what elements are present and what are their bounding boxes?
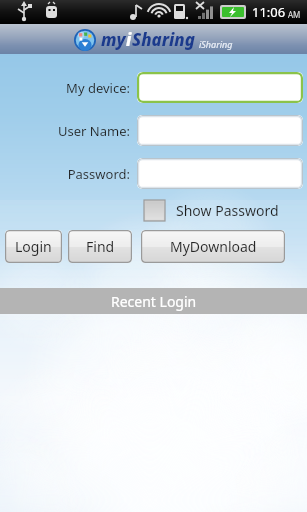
button[interactable]: Login [5,230,62,263]
button[interactable]: Show Password [144,200,307,221]
staticText: 11:06 [252,3,286,21]
staticText: Recent Login [111,292,197,311]
staticText: AM [288,9,301,20]
button[interactable]: Recent Login [0,288,307,314]
staticText: My device: [6,79,130,97]
button[interactable] [137,115,303,146]
staticText: Find [86,237,115,256]
staticText: Show Password [176,201,279,220]
staticText: iSharing [199,38,233,50]
staticText: Sharing [132,28,195,51]
staticText: Login [15,237,52,256]
staticText: MyDownload [170,237,257,256]
staticText: i [126,28,132,51]
staticText: User Name: [6,122,130,140]
button[interactable]: Find [68,230,132,263]
button[interactable] [137,72,303,103]
button[interactable] [137,158,303,189]
button[interactable]: MyDownload [141,230,285,263]
staticText: Password: [6,165,130,183]
staticText: my [101,28,126,51]
